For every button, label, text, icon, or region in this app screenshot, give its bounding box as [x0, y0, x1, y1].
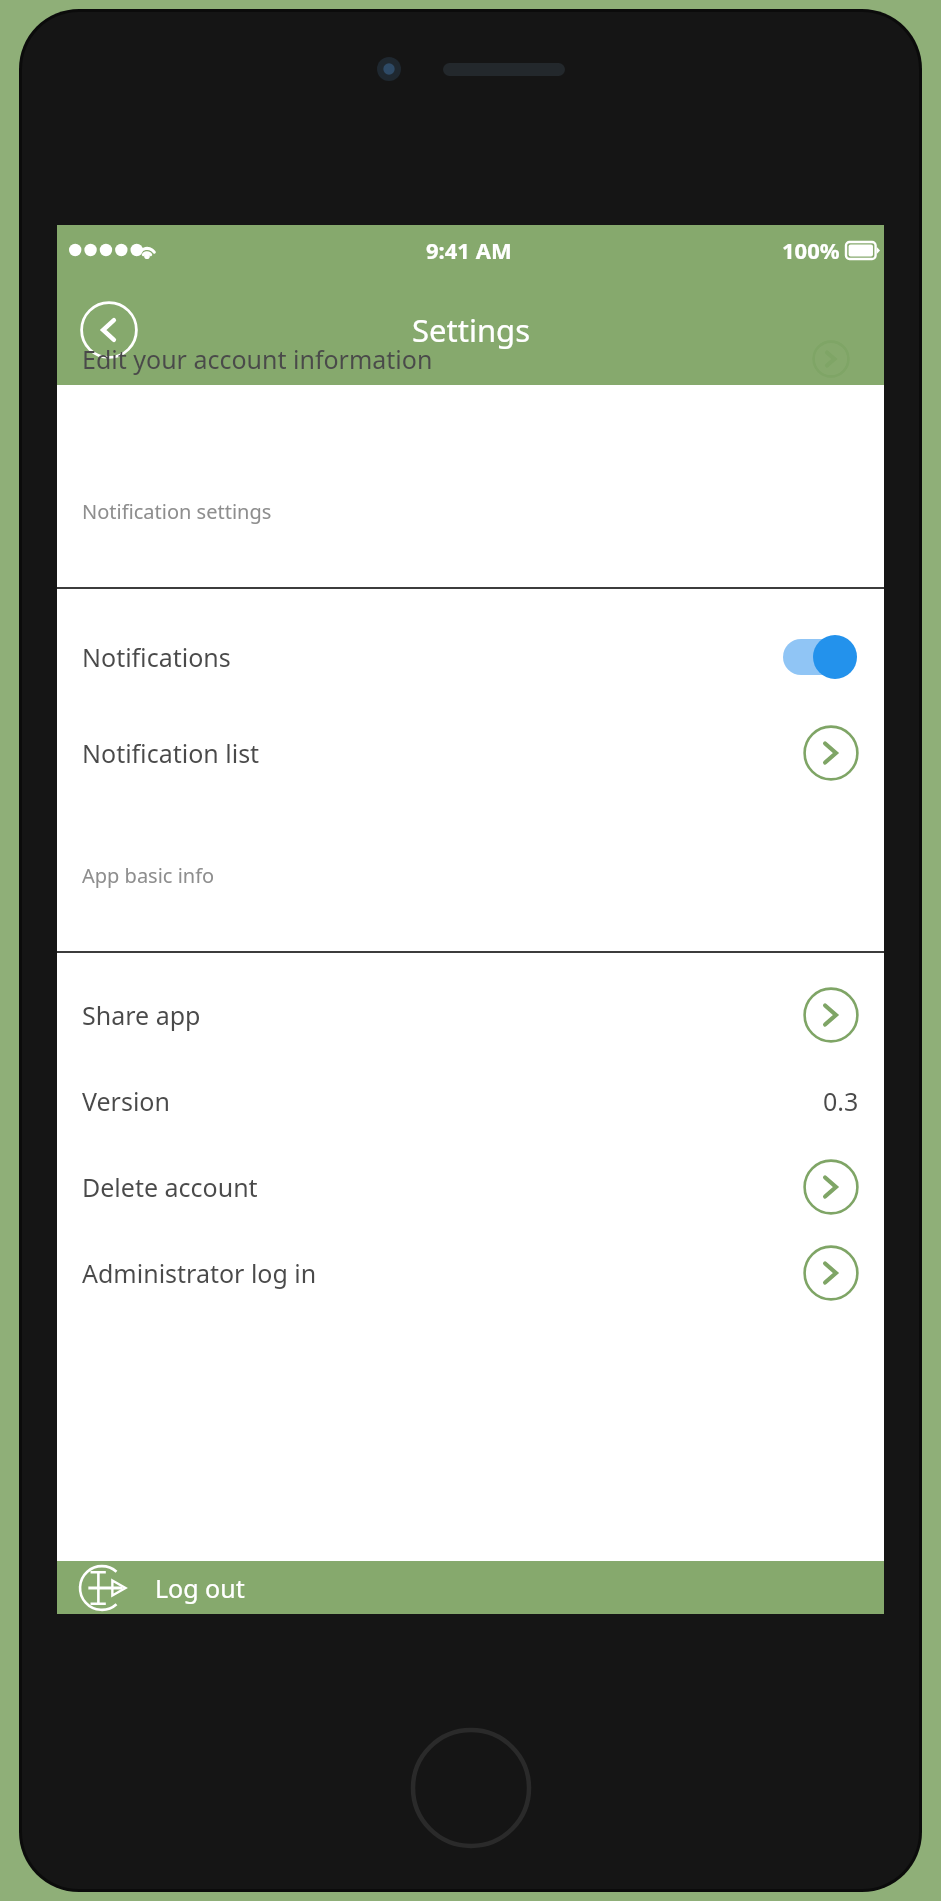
- staticText: 0.3: [823, 1084, 859, 1118]
- staticText: Notifications: [82, 640, 231, 674]
- staticText: Administrator log in: [82, 1256, 317, 1290]
- staticText: Notification settings: [82, 498, 272, 525]
- button[interactable]: Notifications: [57, 623, 884, 691]
- button[interactable]: Back: [80, 301, 138, 359]
- staticText: 9:41 AM: [426, 235, 512, 265]
- button[interactable]: Log out: [57, 1561, 884, 1614]
- staticText: App basic info: [82, 862, 215, 889]
- button[interactable]: Delete account: [57, 1153, 884, 1221]
- staticText: Log out: [155, 1571, 245, 1605]
- staticText: Share app: [82, 998, 201, 1032]
- staticText: Edit your account information: [82, 342, 433, 376]
- staticText: 100%: [782, 235, 840, 265]
- button[interactable]: Notification list: [57, 719, 884, 787]
- staticText: Settings: [412, 309, 530, 351]
- button[interactable]: Share app: [57, 981, 884, 1049]
- staticText: Version: [82, 1084, 170, 1118]
- button[interactable]: Administrator log in: [57, 1239, 884, 1307]
- staticText: Notification list: [82, 736, 260, 770]
- button[interactable]: Home: [411, 1728, 531, 1848]
- button[interactable]: Version: [57, 1067, 884, 1135]
- button[interactable]: Notifications toggle: [783, 629, 859, 685]
- staticText: Delete account: [82, 1170, 258, 1204]
